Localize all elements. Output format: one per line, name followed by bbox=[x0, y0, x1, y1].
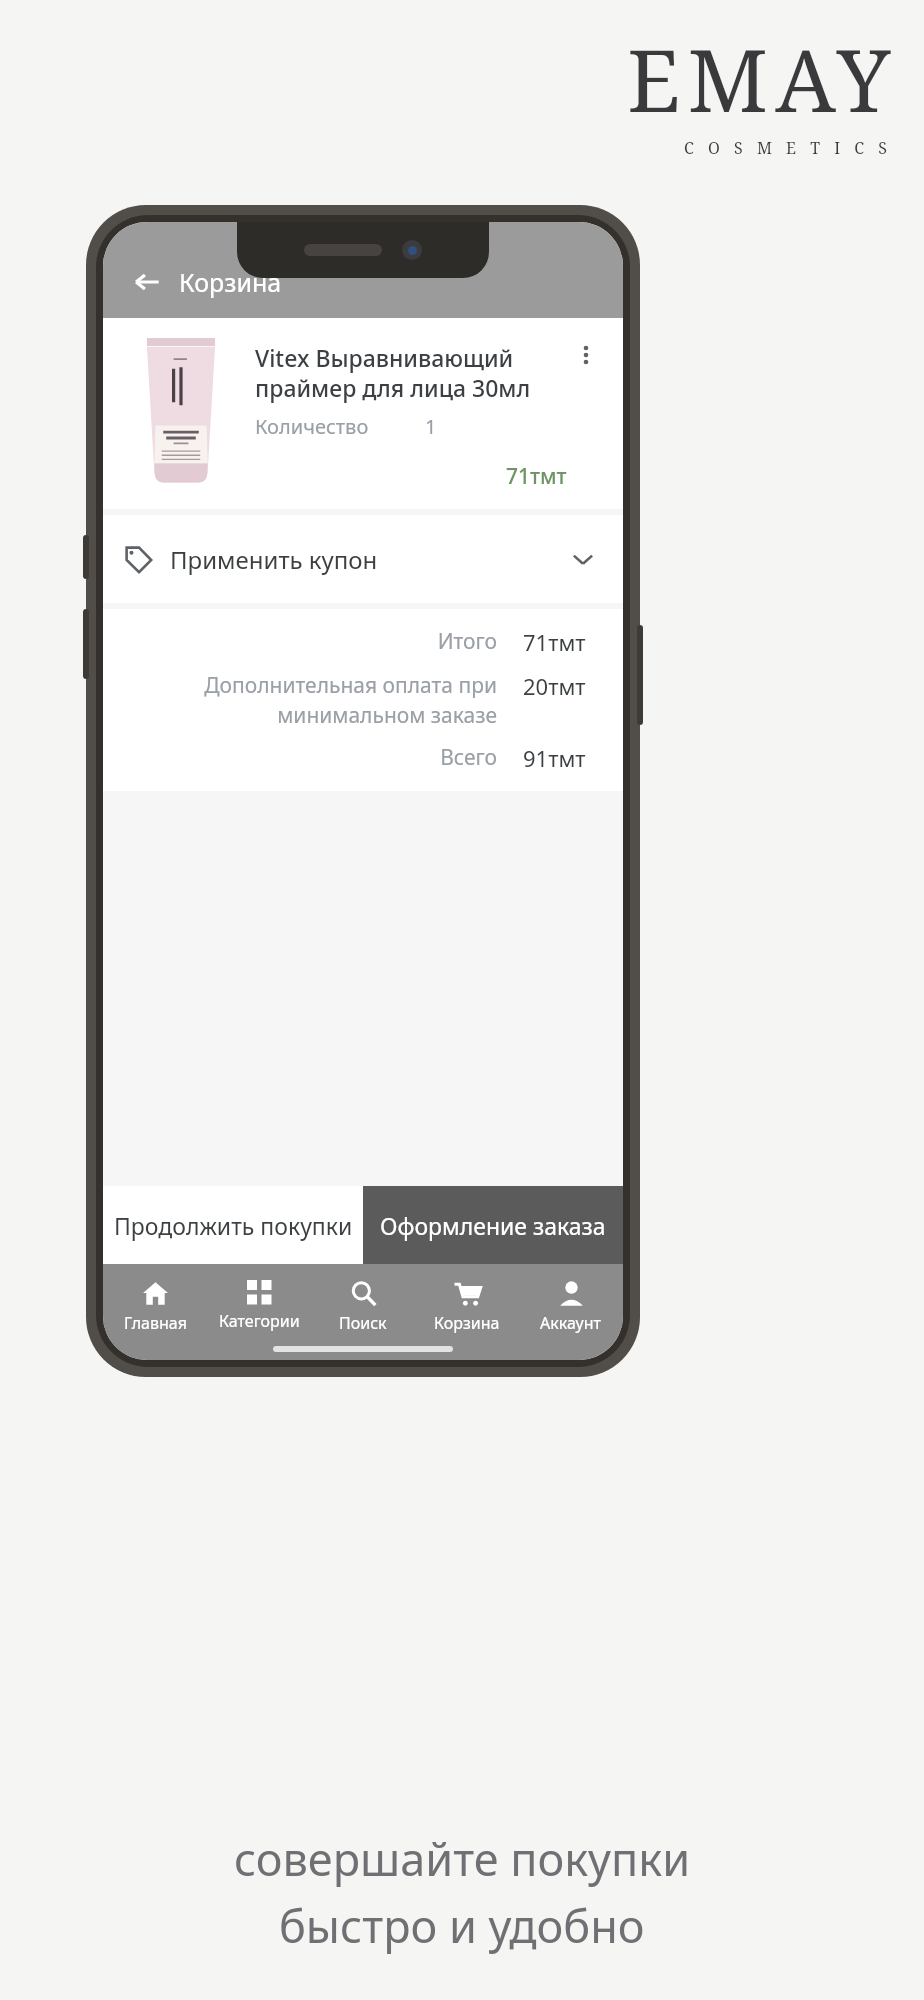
staticText: Главная bbox=[124, 1312, 187, 1334]
staticText: Корзина bbox=[434, 1312, 500, 1334]
button[interactable]: Аккаунт bbox=[519, 1276, 623, 1338]
staticText: Итого bbox=[125, 627, 497, 656]
staticText: Поиск bbox=[339, 1312, 387, 1334]
button[interactable]: Back bbox=[125, 260, 169, 304]
staticText: 71тмт bbox=[523, 627, 601, 657]
staticText: EMAY bbox=[627, 20, 898, 137]
staticText: Применить купон bbox=[170, 543, 378, 576]
staticText: Дополнительная оплата при минимальном за… bbox=[125, 671, 497, 729]
staticText: Всего bbox=[125, 743, 497, 772]
staticText: 71тмт bbox=[506, 462, 567, 491]
other: Expand coupon bbox=[565, 541, 601, 577]
staticText: Vitex Выравнивающий праймер для лица 30м… bbox=[255, 342, 531, 403]
button[interactable]: Корзина bbox=[415, 1276, 519, 1338]
staticText: Продолжить покупки bbox=[114, 1210, 353, 1241]
staticText: совершайте покупки bbox=[234, 1828, 691, 1889]
button[interactable]: Поиск bbox=[311, 1276, 415, 1338]
staticText: C O S M E T I C S bbox=[684, 137, 892, 159]
staticText: 91тмт bbox=[523, 743, 601, 773]
staticText: быстро и удобно bbox=[279, 1895, 645, 1956]
button[interactable]: Применить купон bbox=[103, 515, 623, 603]
button[interactable]: More options bbox=[567, 336, 605, 374]
button[interactable]: Главная bbox=[103, 1276, 207, 1338]
button[interactable]: Оформление заказа bbox=[363, 1186, 623, 1264]
staticText: Оформление заказа bbox=[380, 1210, 606, 1241]
staticText: Количество bbox=[255, 413, 369, 440]
staticText: Категории bbox=[219, 1310, 300, 1332]
staticText: 20тмт bbox=[523, 671, 601, 701]
staticText: 1 bbox=[425, 413, 437, 440]
button[interactable]: Vitex Выравнивающий праймер для лица 30м… bbox=[103, 318, 623, 509]
button[interactable]: Продолжить покупки bbox=[103, 1186, 363, 1264]
staticText: Корзина bbox=[179, 265, 282, 299]
button[interactable]: Категории bbox=[207, 1276, 311, 1336]
staticText: Аккаунт bbox=[540, 1312, 602, 1334]
